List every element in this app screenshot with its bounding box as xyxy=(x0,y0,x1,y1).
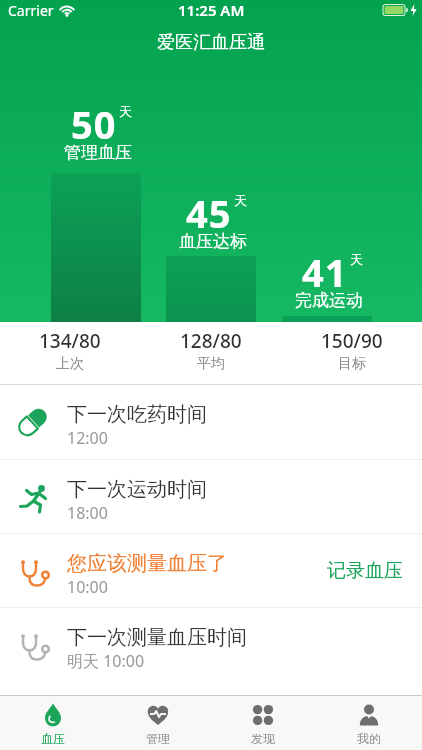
staticText: 45 xyxy=(186,187,232,239)
staticText: 天 xyxy=(350,251,363,267)
button[interactable]: 记录血压 xyxy=(327,559,403,583)
staticText: 下一次测量血压时间 xyxy=(67,625,247,650)
staticText: 管理 xyxy=(146,731,170,746)
button[interactable]: 发现 xyxy=(210,696,316,750)
staticText: 10:00 xyxy=(67,576,108,598)
staticText: 18:00 xyxy=(67,502,108,524)
staticText: 12:00 xyxy=(67,427,108,449)
staticText: 目标 xyxy=(338,355,366,373)
staticText: 管理血压 xyxy=(64,142,132,163)
staticText: 41 xyxy=(302,246,348,298)
button[interactable]: 血压 xyxy=(0,696,105,750)
staticText: 发现 xyxy=(251,731,275,746)
button[interactable]: 下一次吃药时间 xyxy=(0,385,422,459)
staticText: 150/90 xyxy=(321,328,383,354)
staticText: 天 xyxy=(119,103,132,119)
staticText: 天 xyxy=(234,192,247,208)
staticText: 血压 xyxy=(41,731,65,746)
button[interactable]: 管理 xyxy=(105,696,210,750)
staticText: 134/80 xyxy=(39,328,101,354)
staticText: 128/80 xyxy=(180,328,242,354)
staticText: 上次 xyxy=(56,355,84,373)
staticText: 下一次运动时间 xyxy=(67,477,207,502)
staticText: 下一次吃药时间 xyxy=(67,402,207,427)
staticText: 50 xyxy=(71,98,117,150)
staticText: 明天 10:00 xyxy=(67,650,145,672)
staticText: 爱医汇血压通 xyxy=(157,31,265,54)
button[interactable]: 我的 xyxy=(316,696,422,750)
staticText: Carrier xyxy=(8,1,54,20)
staticText: 完成运动 xyxy=(295,290,363,311)
button[interactable]: 下一次运动时间 xyxy=(0,460,422,533)
staticText: 我的 xyxy=(357,731,381,746)
staticText: 您应该测量血压了 xyxy=(67,551,227,576)
staticText: 平均 xyxy=(197,355,225,373)
button[interactable]: 您应该测量血压了 xyxy=(0,534,422,607)
button[interactable]: 下一次测量血压时间 xyxy=(0,608,422,681)
staticText: 血压达标 xyxy=(179,231,247,252)
staticText: 11:25 AM xyxy=(178,0,245,20)
